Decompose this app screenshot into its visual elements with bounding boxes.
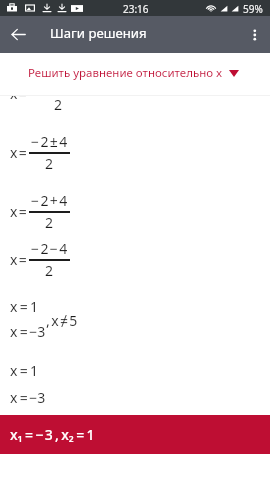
staticText: , x ≠ 5 (46, 311, 78, 330)
staticText: 2 (45, 213, 54, 232)
staticText: x₁ = − 3 , x₂ = 1 (10, 425, 95, 444)
staticText: 23:16 (123, 2, 149, 16)
staticText: 2 (45, 154, 54, 173)
staticText: 2 (45, 261, 54, 280)
staticText: x = (10, 202, 27, 221)
staticText: − 2 − 4 (31, 239, 68, 258)
staticText: − 2 ± 4 (31, 132, 68, 151)
staticText: 59% (243, 2, 263, 16)
staticText: − 2 + 4 (31, 191, 68, 210)
staticText: − 2 ± 4 − x (31, 73, 86, 92)
staticText: x = −3 (10, 388, 46, 407)
button[interactable]: x₁ = − 3 , x₂ = 1 (0, 415, 270, 454)
button[interactable]: More options (232, 16, 269, 53)
staticText: 2 (54, 95, 63, 114)
staticText: x = (10, 143, 27, 162)
staticText: x = (10, 250, 27, 269)
staticText: x = 1 (10, 297, 39, 316)
staticText: x = 1 (10, 361, 39, 380)
staticText: x = (10, 84, 27, 103)
staticText: x = −3 (10, 322, 46, 341)
button[interactable]: Решить уравнение относительно x (0, 53, 270, 95)
button[interactable]: Back (0, 16, 37, 53)
staticText: Шаги решения (50, 24, 147, 42)
staticText: Решить уравнение относительно x (28, 65, 223, 81)
